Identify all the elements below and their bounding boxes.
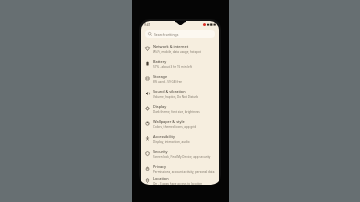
- button[interactable]: Storage: [141, 71, 219, 86]
- staticText: Wi‑Fi, mobile, data usage, hotspot: [153, 50, 201, 54]
- button[interactable]: Search settings: [145, 30, 215, 38]
- button[interactable]: Wallpaper & style: [141, 116, 219, 131]
- staticText: Storage: [153, 74, 168, 79]
- staticText: 8% used - 59 GB free: [153, 80, 183, 84]
- staticText: 57% - about 3 hr 15 min left: [153, 65, 192, 69]
- staticText: Screen lock, Find My Device, app securit…: [153, 155, 211, 159]
- staticText: Volume, haptics, Do Not Disturb: [153, 95, 199, 99]
- button[interactable]: Privacy: [141, 161, 219, 176]
- staticText: Search settings: [154, 32, 179, 37]
- staticText: Dark theme, font size, brightness: [153, 110, 200, 114]
- button[interactable]: Accessibility: [141, 131, 219, 146]
- staticText: Colors, themed icons, app grid: [153, 125, 197, 129]
- staticText: Battery: [153, 59, 167, 64]
- staticText: 9:41: [144, 23, 151, 27]
- button[interactable]: Sound & vibration: [141, 86, 219, 101]
- button[interactable]: Display: [141, 101, 219, 116]
- button[interactable]: Security: [141, 146, 219, 161]
- button[interactable]: Battery: [141, 56, 219, 71]
- staticText: Location: [153, 176, 169, 181]
- staticText: Wallpaper & style: [153, 119, 185, 124]
- staticText: On - 3 apps have access to location: [153, 182, 203, 185]
- staticText: Sound & vibration: [153, 89, 186, 94]
- staticText: Security: [153, 149, 168, 154]
- staticText: Permissions, account activity, personal …: [153, 170, 215, 174]
- staticText: Privacy: [153, 164, 166, 169]
- staticText: Network & internet: [153, 44, 189, 49]
- button[interactable]: Network & internet: [141, 41, 219, 56]
- staticText: Accessibility: [153, 134, 175, 139]
- staticText: Display: [153, 104, 167, 109]
- staticText: Display, interaction, audio: [153, 140, 190, 144]
- button[interactable]: Location: [141, 176, 219, 185]
